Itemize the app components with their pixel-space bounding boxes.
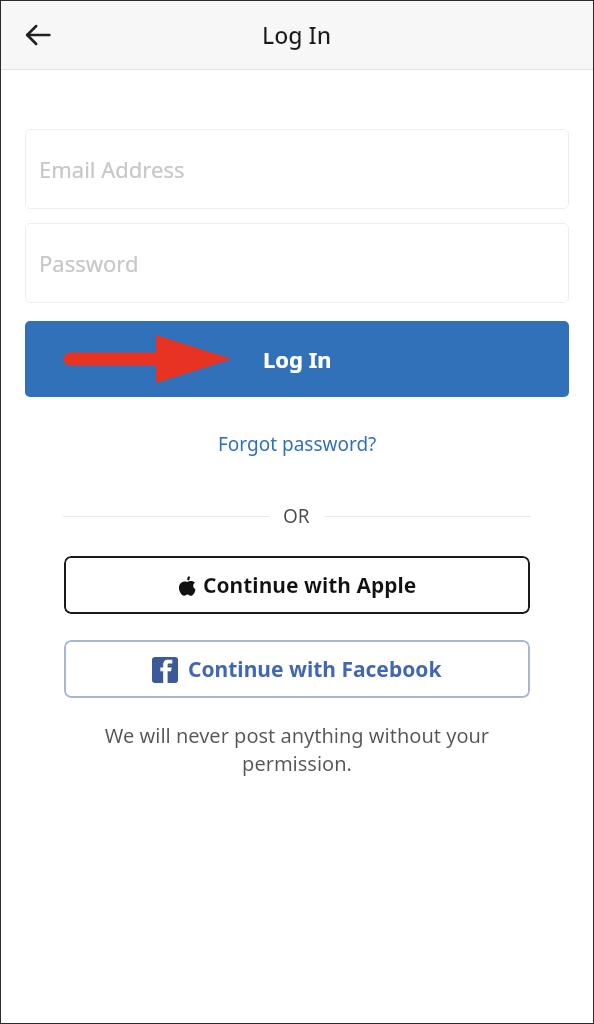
button[interactable]: Continue with Facebook [64,640,530,698]
staticText: Forgot password? [218,431,377,457]
button[interactable]: Log In [25,321,569,397]
staticText: OR [283,503,310,529]
button[interactable]: Forgot password? [210,427,385,461]
staticText: Log In [262,19,332,50]
staticText: Email Address [39,154,185,184]
staticText: Continue with Facebook [188,655,442,684]
button[interactable]: Continue with Apple [64,556,530,614]
staticText: We will never post anything without your… [88,722,506,777]
button[interactable]: Back [14,11,62,59]
button[interactable]: Password [25,223,569,303]
staticText: Continue with Apple [203,571,417,600]
staticText: Password [39,248,139,278]
staticText: Log In [263,344,332,374]
button[interactable]: Email Address [25,129,569,209]
